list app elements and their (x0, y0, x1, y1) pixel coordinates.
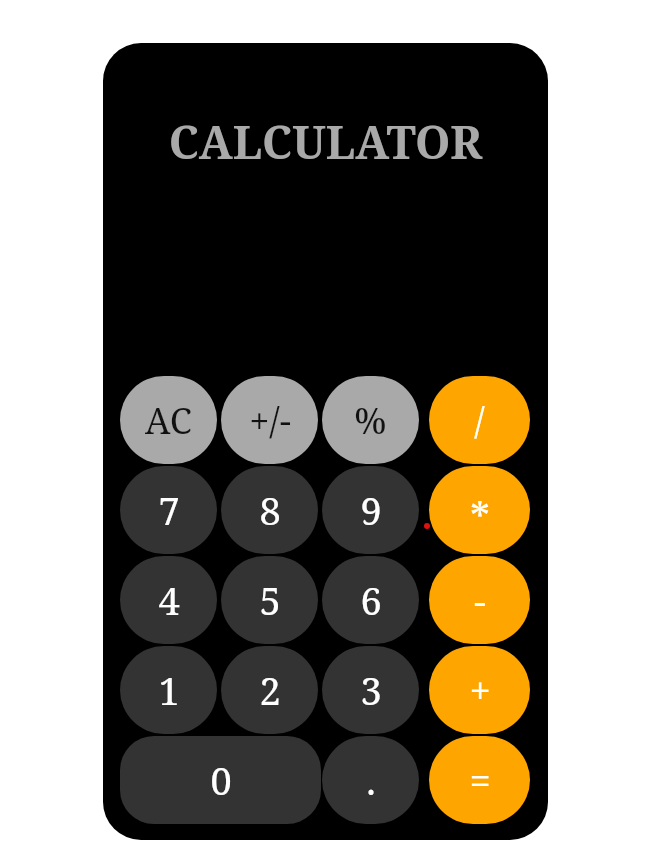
staticText: 3 (360, 664, 382, 716)
staticText: 7 (158, 484, 180, 536)
staticText: AC (145, 396, 192, 445)
staticText: . (366, 754, 376, 806)
staticText: + (469, 664, 491, 716)
button[interactable]: +/- (221, 376, 318, 464)
staticText: 9 (360, 484, 382, 536)
staticText: 8 (259, 484, 281, 536)
button[interactable]: 4 (120, 556, 217, 644)
button[interactable]: % (322, 376, 419, 464)
staticText: 5 (259, 574, 281, 626)
staticText: 2 (259, 664, 281, 716)
staticText: - (474, 574, 486, 626)
staticText: / (474, 396, 485, 445)
button[interactable]: 3 (322, 646, 419, 734)
button[interactable]: Minus (429, 556, 530, 644)
button[interactable]: 0 (120, 736, 321, 824)
button[interactable]: 6 (322, 556, 419, 644)
button[interactable]: 5 (221, 556, 318, 644)
button[interactable]: 2 (221, 646, 318, 734)
button[interactable]: AC (120, 376, 217, 464)
staticText: CALCULATOR (103, 111, 548, 172)
button[interactable]: 8 (221, 466, 318, 554)
button[interactable]: Multiply (429, 466, 530, 554)
button[interactable]: Plus (429, 646, 530, 734)
button[interactable]: Equals (429, 736, 530, 824)
button[interactable]: 1 (120, 646, 217, 734)
staticText: = (469, 754, 491, 806)
staticText: * (470, 489, 490, 543)
staticText: +/- (249, 396, 291, 445)
staticText: 6 (360, 574, 382, 626)
staticText: 1 (158, 664, 180, 716)
staticText: 4 (158, 574, 180, 626)
button[interactable]: Divide (429, 376, 530, 464)
staticText: 0 (210, 754, 232, 806)
button[interactable]: 9 (322, 466, 419, 554)
button[interactable]: 7 (120, 466, 217, 554)
staticText: % (354, 396, 387, 445)
button[interactable]: Decimal point (322, 736, 419, 824)
